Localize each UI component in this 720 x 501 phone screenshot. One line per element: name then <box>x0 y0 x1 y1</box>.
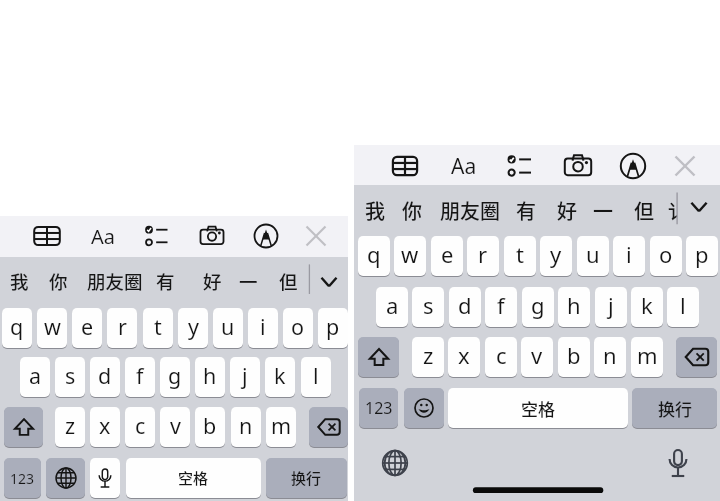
button[interactable]: a <box>376 287 408 327</box>
button[interactable]: u <box>577 236 609 276</box>
staticText: v <box>531 340 543 370</box>
button[interactable]: Checklist <box>140 219 174 253</box>
button[interactable]: Switch keyboard <box>46 458 85 498</box>
button[interactable]: 好 <box>550 193 584 227</box>
button[interactable]: 但 <box>272 265 304 297</box>
button[interactable]: q <box>2 308 32 348</box>
button[interactable]: m <box>266 407 296 447</box>
button[interactable]: s <box>55 357 85 397</box>
button[interactable]: Numbers <box>4 458 41 498</box>
button[interactable]: s <box>412 287 444 327</box>
button[interactable]: 你 <box>42 265 74 297</box>
button[interactable]: d <box>449 287 481 327</box>
button[interactable]: i <box>248 308 278 348</box>
button[interactable]: Close <box>299 219 333 253</box>
button[interactable]: n <box>231 407 261 447</box>
button[interactable]: w <box>394 236 426 276</box>
button[interactable]: q <box>358 236 390 276</box>
button[interactable]: f <box>125 357 155 397</box>
button[interactable]: y <box>178 308 208 348</box>
button[interactable]: z <box>55 407 85 447</box>
button[interactable]: 有 <box>149 265 181 297</box>
button[interactable]: Dictation <box>90 458 120 498</box>
button[interactable]: Camera <box>559 147 597 185</box>
staticText: y <box>188 312 199 341</box>
button[interactable]: 你 <box>395 193 429 227</box>
button[interactable]: c <box>125 407 155 447</box>
button[interactable]: o <box>283 308 313 348</box>
button[interactable]: 但 <box>627 193 661 227</box>
button[interactable]: v <box>521 337 553 377</box>
button[interactable]: Emoji <box>404 388 444 428</box>
button[interactable]: Checklist <box>501 147 539 185</box>
button[interactable]: 好 <box>196 265 228 297</box>
button[interactable]: 一 <box>586 193 620 227</box>
button[interactable]: a <box>20 357 50 397</box>
button[interactable]: x <box>448 337 480 377</box>
button[interactable]: r <box>107 308 137 348</box>
button[interactable]: n <box>594 337 626 377</box>
button[interactable]: Backspace <box>676 337 717 377</box>
button[interactable]: 我 <box>3 265 35 297</box>
button[interactable]: 我 <box>358 193 392 227</box>
button[interactable]: Shift <box>4 407 43 447</box>
button[interactable]: Dictation <box>660 445 696 481</box>
button[interactable]: 换行 <box>632 388 717 428</box>
staticText: m <box>637 340 658 370</box>
button[interactable]: w <box>37 308 67 348</box>
button[interactable]: f <box>485 287 517 327</box>
button[interactable]: l <box>667 287 699 327</box>
button[interactable]: Aa <box>444 148 484 184</box>
button[interactable]: More candidates <box>684 192 714 222</box>
button[interactable]: 朋友圈 <box>80 265 150 297</box>
button[interactable]: Close <box>666 147 704 185</box>
button[interactable]: u <box>213 308 243 348</box>
button[interactable]: t <box>504 236 536 276</box>
button[interactable]: c <box>485 337 517 377</box>
button[interactable]: r <box>467 236 499 276</box>
button[interactable]: 一 <box>232 265 264 297</box>
button[interactable]: Switch keyboard <box>377 445 413 481</box>
button[interactable]: h <box>195 357 225 397</box>
button[interactable]: Table <box>386 147 424 185</box>
button[interactable]: e <box>72 308 102 348</box>
button[interactable]: Numbers <box>359 388 398 428</box>
button[interactable]: 换行 <box>266 458 347 498</box>
button[interactable]: e <box>431 236 463 276</box>
button[interactable]: 有 <box>509 193 543 227</box>
button[interactable]: v <box>160 407 190 447</box>
button[interactable]: 朋友圈 <box>432 193 508 227</box>
button[interactable]: z <box>412 337 444 377</box>
button[interactable]: k <box>631 287 663 327</box>
button[interactable]: m <box>631 337 663 377</box>
button[interactable]: Table <box>30 219 64 253</box>
button[interactable]: j <box>230 357 260 397</box>
button[interactable]: t <box>143 308 173 348</box>
button[interactable]: Markup <box>614 147 652 185</box>
button[interactable]: More candidates <box>314 267 344 297</box>
button[interactable]: i <box>613 236 645 276</box>
staticText: l <box>313 361 319 390</box>
button[interactable]: p <box>686 236 718 276</box>
button[interactable]: Aa <box>85 219 121 253</box>
button[interactable]: g <box>522 287 554 327</box>
button[interactable]: Backspace <box>309 407 348 447</box>
button[interactable]: b <box>558 337 590 377</box>
button[interactable]: b <box>195 407 225 447</box>
button[interactable]: x <box>90 407 120 447</box>
button[interactable]: d <box>90 357 120 397</box>
button[interactable]: l <box>301 357 331 397</box>
button[interactable]: k <box>265 357 295 397</box>
button[interactable]: Camera <box>195 219 229 253</box>
button[interactable]: 空格 <box>126 458 261 498</box>
button[interactable]: 空格 <box>448 388 628 428</box>
button[interactable]: y <box>540 236 572 276</box>
button[interactable]: g <box>160 357 190 397</box>
button[interactable]: p <box>318 308 348 348</box>
button[interactable]: j <box>595 287 627 327</box>
staticText: s <box>65 361 76 390</box>
button[interactable]: Markup <box>249 219 283 253</box>
button[interactable]: h <box>558 287 590 327</box>
button[interactable]: Shift <box>358 337 399 377</box>
button[interactable]: o <box>650 236 682 276</box>
